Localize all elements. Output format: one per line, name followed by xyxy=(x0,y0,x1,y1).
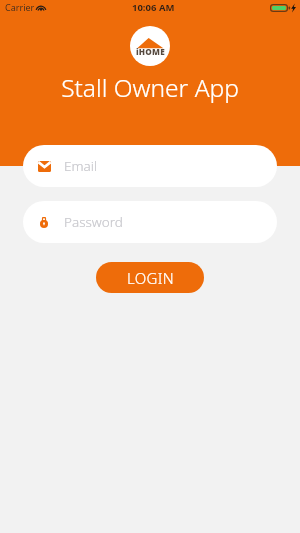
staticText: 10:06 AM xyxy=(132,1,175,14)
other: Password xyxy=(40,201,48,243)
staticText: Stall Owner App xyxy=(61,71,239,104)
staticText: Email xyxy=(64,157,98,175)
other: Email xyxy=(38,145,51,187)
button[interactable]: Password xyxy=(23,201,277,243)
staticText: LOGIN xyxy=(127,268,174,288)
staticText: Password xyxy=(64,213,123,231)
staticText: iHOME xyxy=(136,46,165,57)
staticText: Carrier xyxy=(5,1,35,13)
button[interactable]: LOGIN xyxy=(96,262,204,293)
button[interactable]: Email xyxy=(23,145,277,187)
